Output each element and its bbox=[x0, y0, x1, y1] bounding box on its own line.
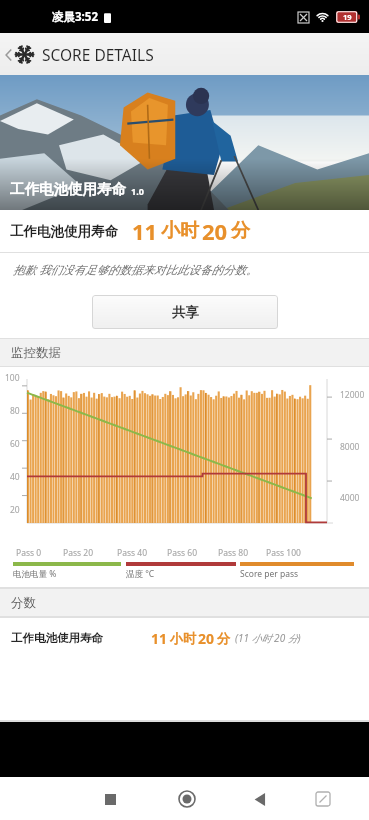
staticText: 抱歉 我们没有足够的数据来对比此设备的分数。 bbox=[13, 262, 258, 278]
staticText: 温度 °C bbox=[126, 568, 155, 580]
staticText: 40 bbox=[10, 471, 20, 483]
staticText: 分数 bbox=[11, 595, 36, 611]
staticText: 小时 bbox=[161, 219, 199, 243]
staticText: 11 bbox=[151, 629, 168, 648]
staticText: 20 bbox=[198, 629, 215, 648]
staticText: 工作电池使用寿命 bbox=[10, 180, 126, 198]
staticText: 1.0 bbox=[131, 185, 144, 197]
staticText: 监控数据 bbox=[11, 345, 61, 361]
staticText: Pass 80 bbox=[218, 547, 248, 559]
staticText: 共享 bbox=[172, 304, 199, 321]
staticText: 分 bbox=[231, 219, 250, 243]
staticText: 12000 bbox=[340, 389, 365, 401]
staticText: (11 小时 20 分) bbox=[235, 631, 301, 645]
button[interactable]: Recent apps bbox=[92, 781, 128, 817]
staticText: 工作电池使用寿命 bbox=[11, 631, 103, 645]
button[interactable]: Back bbox=[242, 781, 278, 817]
staticText: 电池电量 % bbox=[13, 568, 57, 580]
staticText: Pass 100 bbox=[266, 547, 301, 559]
staticText: 8000 bbox=[340, 441, 360, 453]
button[interactable]: 工作电池使用寿命 bbox=[0, 618, 369, 658]
staticText: 凌晨3:52 bbox=[52, 9, 98, 25]
staticText: Pass 0 bbox=[16, 547, 42, 559]
staticText: 100 bbox=[5, 372, 20, 384]
staticText: Score per pass bbox=[240, 568, 299, 580]
staticText: 20 bbox=[202, 216, 228, 246]
button[interactable]: Screenshot bbox=[305, 781, 341, 817]
button[interactable]: 共享 bbox=[92, 295, 278, 329]
staticText: 4000 bbox=[340, 492, 360, 504]
staticText: 19 bbox=[343, 12, 352, 22]
staticText: 20 bbox=[10, 504, 20, 516]
staticText: Pass 60 bbox=[167, 547, 197, 559]
staticText: Pass 40 bbox=[117, 547, 147, 559]
staticText: SCORE DETAILS bbox=[42, 44, 154, 65]
button[interactable]: Back to score details bbox=[0, 33, 369, 75]
staticText: Pass 20 bbox=[63, 547, 93, 559]
staticText: 分 bbox=[217, 630, 230, 646]
staticText: 工作电池使用寿命 bbox=[10, 223, 118, 240]
staticText: 11 bbox=[132, 216, 158, 246]
staticText: 80 bbox=[10, 405, 20, 417]
staticText: 小时 bbox=[170, 630, 196, 646]
staticText: 60 bbox=[10, 438, 20, 450]
button[interactable]: Home bbox=[169, 781, 205, 817]
